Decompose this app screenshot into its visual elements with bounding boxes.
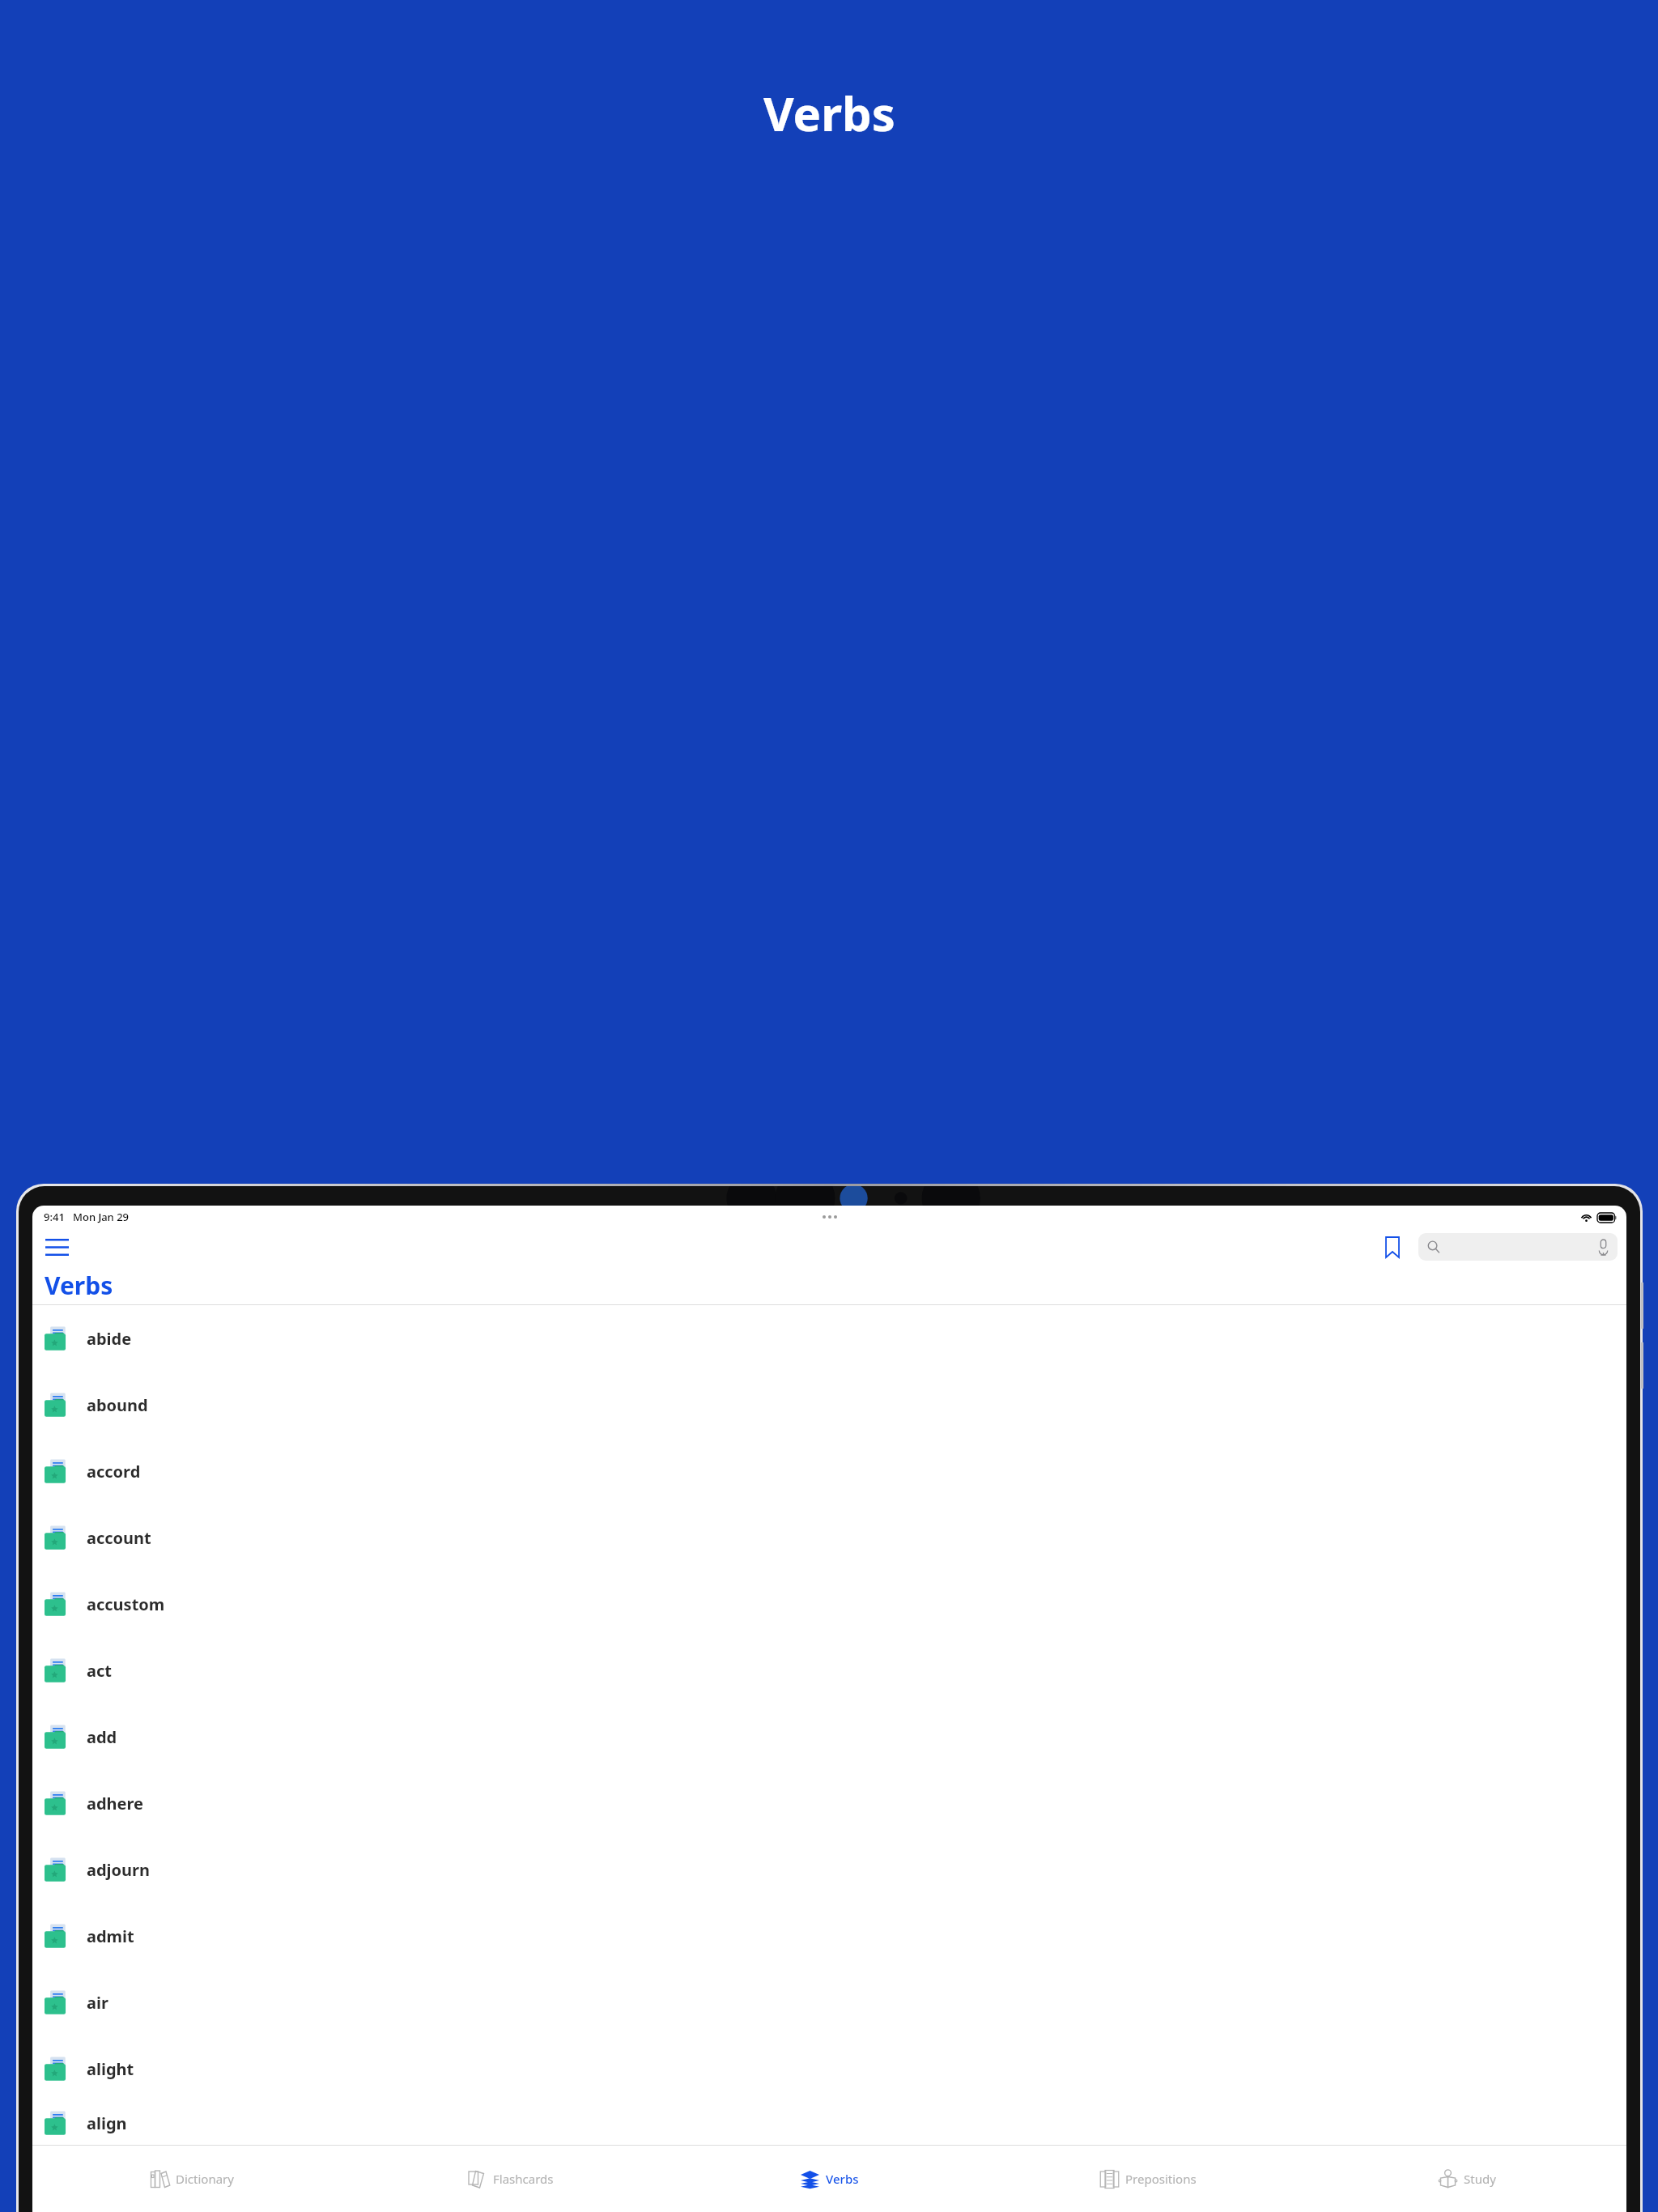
button[interactable]: account bbox=[32, 1504, 1626, 1571]
staticText: Verbs bbox=[763, 81, 895, 145]
button[interactable]: Bookmarks bbox=[1376, 1231, 1409, 1263]
button[interactable]: adhere bbox=[32, 1770, 1626, 1836]
staticText: accustom bbox=[87, 1593, 165, 1615]
staticText: 9:41 bbox=[44, 1210, 65, 1224]
button[interactable]: Prepositions bbox=[988, 2146, 1307, 2212]
button[interactable]: align bbox=[32, 2102, 1626, 2145]
button[interactable]: abound bbox=[32, 1372, 1626, 1438]
staticText: Study bbox=[1464, 2171, 1496, 2187]
button[interactable]: Menu bbox=[39, 1229, 74, 1265]
button[interactable]: accustom bbox=[32, 1571, 1626, 1637]
button[interactable]: Study bbox=[1307, 2146, 1626, 2212]
button[interactable]: admit bbox=[32, 1903, 1626, 1969]
staticText: abide bbox=[87, 1328, 132, 1350]
button[interactable]: abide bbox=[32, 1305, 1626, 1372]
staticText: admit bbox=[87, 1925, 134, 1947]
staticText: Dictionary bbox=[176, 2171, 234, 2187]
staticText: Prepositions bbox=[1125, 2171, 1197, 2187]
staticText: Verbs bbox=[826, 2171, 859, 2187]
button[interactable]: adjourn bbox=[32, 1836, 1626, 1903]
button[interactable]: air bbox=[32, 1969, 1626, 2035]
staticText: act bbox=[87, 1660, 112, 1682]
button[interactable]: Flashcards bbox=[351, 2146, 670, 2212]
staticText: align bbox=[87, 2112, 127, 2134]
staticText: Mon Jan 29 bbox=[73, 1210, 130, 1224]
button[interactable]: act bbox=[32, 1637, 1626, 1704]
staticText: alight bbox=[87, 2058, 134, 2080]
staticText: accord bbox=[87, 1461, 141, 1482]
button[interactable]: Verbs bbox=[670, 2146, 988, 2212]
staticText: Verbs bbox=[45, 1269, 113, 1302]
staticText: add bbox=[87, 1726, 117, 1748]
button[interactable]: Search bbox=[1418, 1233, 1618, 1261]
staticText: abound bbox=[87, 1394, 148, 1416]
staticText: Flashcards bbox=[493, 2171, 554, 2187]
button[interactable]: accord bbox=[32, 1438, 1626, 1504]
staticText: account bbox=[87, 1527, 151, 1549]
button[interactable]: Dictionary bbox=[32, 2146, 351, 2212]
staticText: adhere bbox=[87, 1793, 144, 1814]
staticText: adjourn bbox=[87, 1859, 151, 1881]
staticText: air bbox=[87, 1992, 108, 2014]
button[interactable]: add bbox=[32, 1704, 1626, 1770]
button[interactable]: alight bbox=[32, 2035, 1626, 2102]
